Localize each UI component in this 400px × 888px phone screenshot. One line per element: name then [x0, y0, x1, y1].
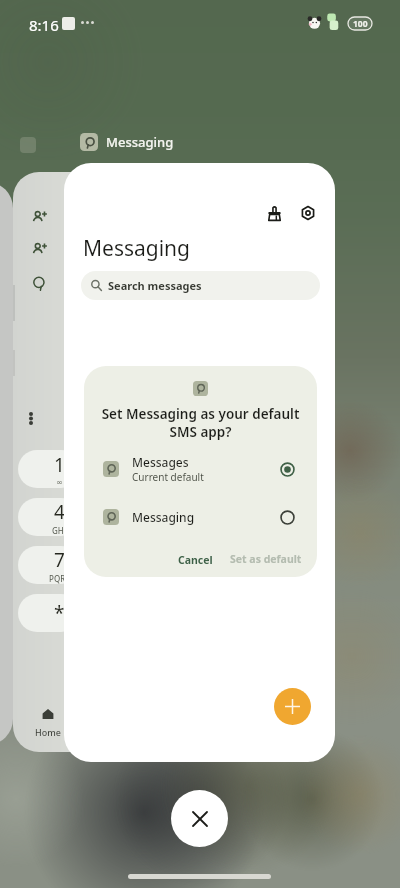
staticText: Home [35, 726, 61, 738]
staticText: 100 [353, 18, 368, 30]
staticText: Set as default [230, 552, 302, 566]
button[interactable]: Messaging [80, 133, 174, 151]
button[interactable]: 4 [18, 498, 80, 536]
staticText: Search messages [108, 278, 202, 293]
staticText: Set Messaging as your default SMS app? [84, 405, 317, 441]
staticText: Cancel [178, 553, 213, 567]
staticText: Messaging [106, 133, 174, 151]
button[interactable]: Close all [171, 790, 228, 847]
staticText: ∞ [56, 478, 63, 487]
button[interactable]: Set as default [222, 549, 310, 569]
button[interactable]: Cancel [169, 549, 222, 571]
staticText: 4 [54, 499, 65, 525]
button[interactable]: 1 [18, 450, 80, 488]
staticText: 7 [54, 547, 65, 573]
staticText: GHI [52, 525, 67, 536]
staticText: Messaging [132, 509, 195, 525]
staticText: Messages [132, 454, 189, 470]
button[interactable]: 7 [18, 546, 80, 584]
staticText: * [54, 600, 65, 626]
staticText: Messaging [83, 234, 191, 263]
button[interactable]: Clean up [260, 199, 288, 227]
button[interactable]: Messages [84, 449, 317, 489]
staticText: 8:16 [29, 15, 59, 35]
button[interactable]: * [18, 594, 80, 632]
button[interactable]: Search messages [81, 271, 320, 300]
button[interactable]: New conversation [274, 688, 311, 725]
staticText: PQRS [49, 573, 70, 584]
staticText: Current default [132, 470, 204, 484]
staticText: 1 [54, 452, 65, 478]
button[interactable]: Messaging [84, 497, 317, 537]
button[interactable]: Settings [294, 199, 322, 227]
